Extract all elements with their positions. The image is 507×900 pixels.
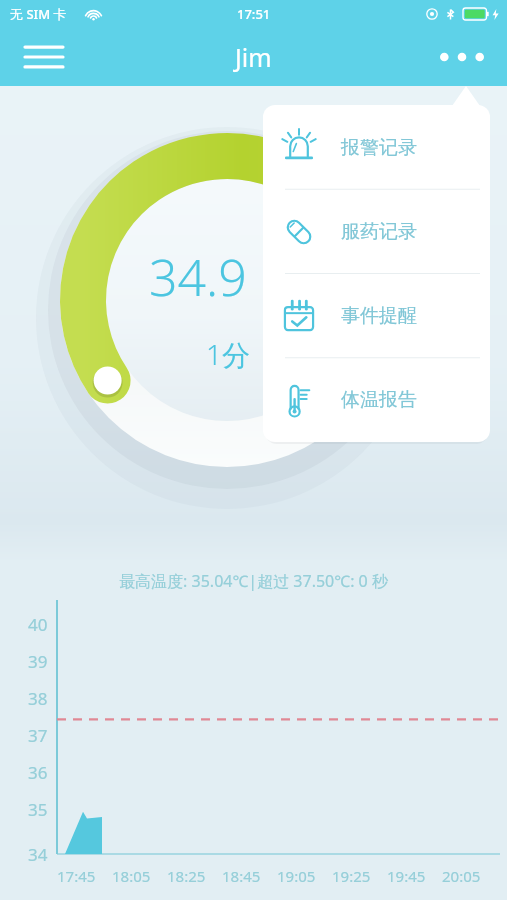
button[interactable]: 服药记录 [263, 190, 490, 274]
staticText: 最高温度: 35.04℃|超过 37.50℃: 0 秒 [0, 570, 507, 592]
staticText: 事件提醒 [341, 304, 417, 328]
button[interactable]: 事件提醒 [263, 274, 490, 358]
button[interactable]: Menu [22, 35, 66, 79]
staticText: 20:05 [442, 866, 481, 886]
staticText: 34.9 [149, 243, 247, 311]
staticText: 34 [28, 843, 48, 866]
staticText: 19:25 [332, 866, 371, 886]
staticText: 1分 [206, 335, 250, 373]
staticText: 17:45 [57, 866, 96, 886]
staticText: 报警记录 [341, 136, 417, 160]
staticText: 35 [28, 798, 48, 821]
button[interactable]: 报警记录 [263, 105, 490, 190]
staticText: 服药记录 [341, 220, 417, 244]
staticText: 18:25 [167, 866, 206, 886]
staticText: 18:05 [112, 866, 151, 886]
staticText: 19:05 [277, 866, 316, 886]
staticText: 38 [28, 687, 48, 710]
button[interactable]: 体温报告 [263, 358, 490, 442]
staticText: 19:45 [387, 866, 426, 886]
staticText: 无 SIM 卡 [10, 5, 67, 23]
staticText: 17:51 [237, 5, 271, 23]
staticText: Jim [235, 40, 272, 74]
staticText: 18:45 [222, 866, 261, 886]
staticText: 40 [28, 613, 48, 636]
button[interactable]: More options [433, 35, 491, 79]
staticText: 体温报告 [341, 388, 417, 412]
staticText: 36 [28, 761, 48, 784]
staticText: 39 [28, 650, 48, 673]
staticText: 37 [28, 724, 48, 747]
